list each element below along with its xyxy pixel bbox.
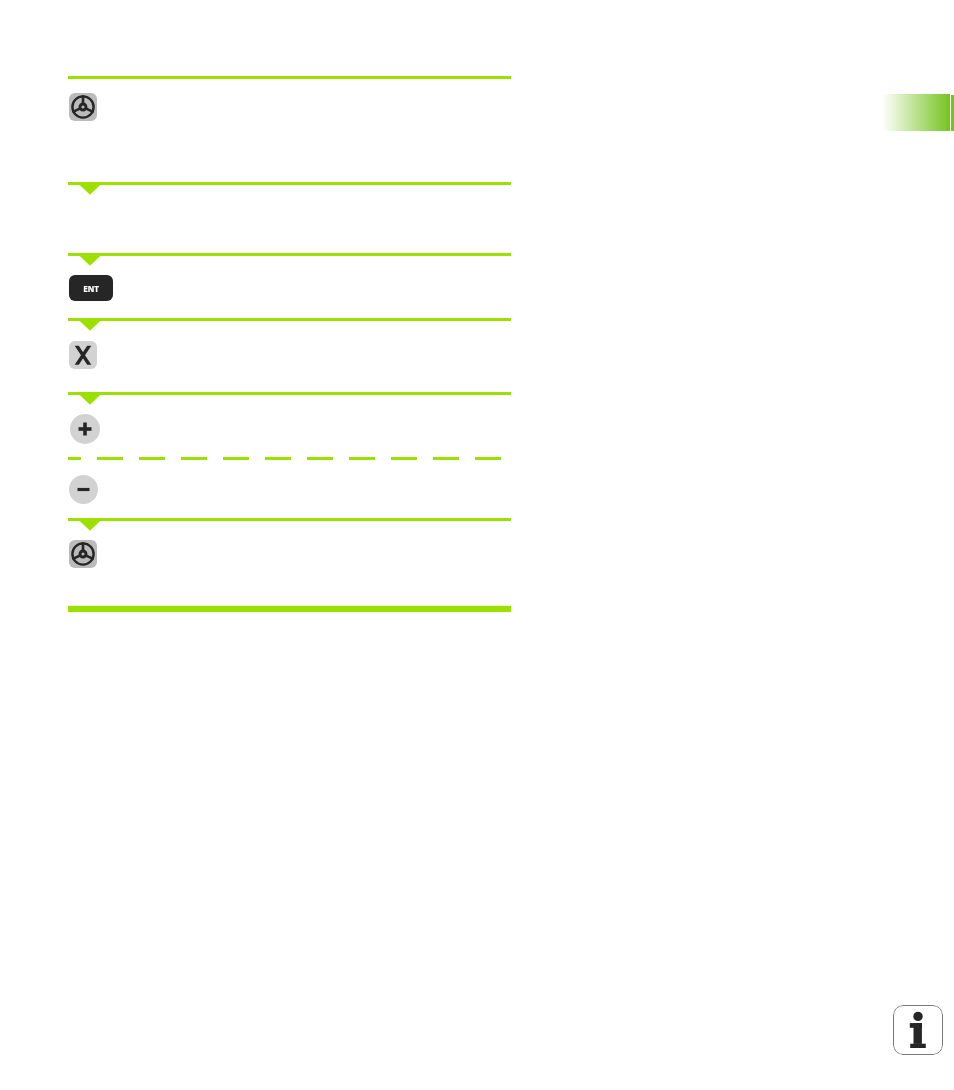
button[interactable]: Steering wheel bbox=[69, 93, 97, 121]
button[interactable]: Decrease bbox=[69, 475, 98, 504]
button[interactable]: Steering wheel bbox=[69, 540, 97, 568]
button[interactable]: Cancel bbox=[69, 341, 97, 369]
button[interactable]: Info bbox=[893, 1005, 943, 1055]
button[interactable]: ENT bbox=[69, 275, 113, 301]
staticText: ENT bbox=[83, 283, 99, 294]
button[interactable]: Increase bbox=[70, 414, 100, 444]
